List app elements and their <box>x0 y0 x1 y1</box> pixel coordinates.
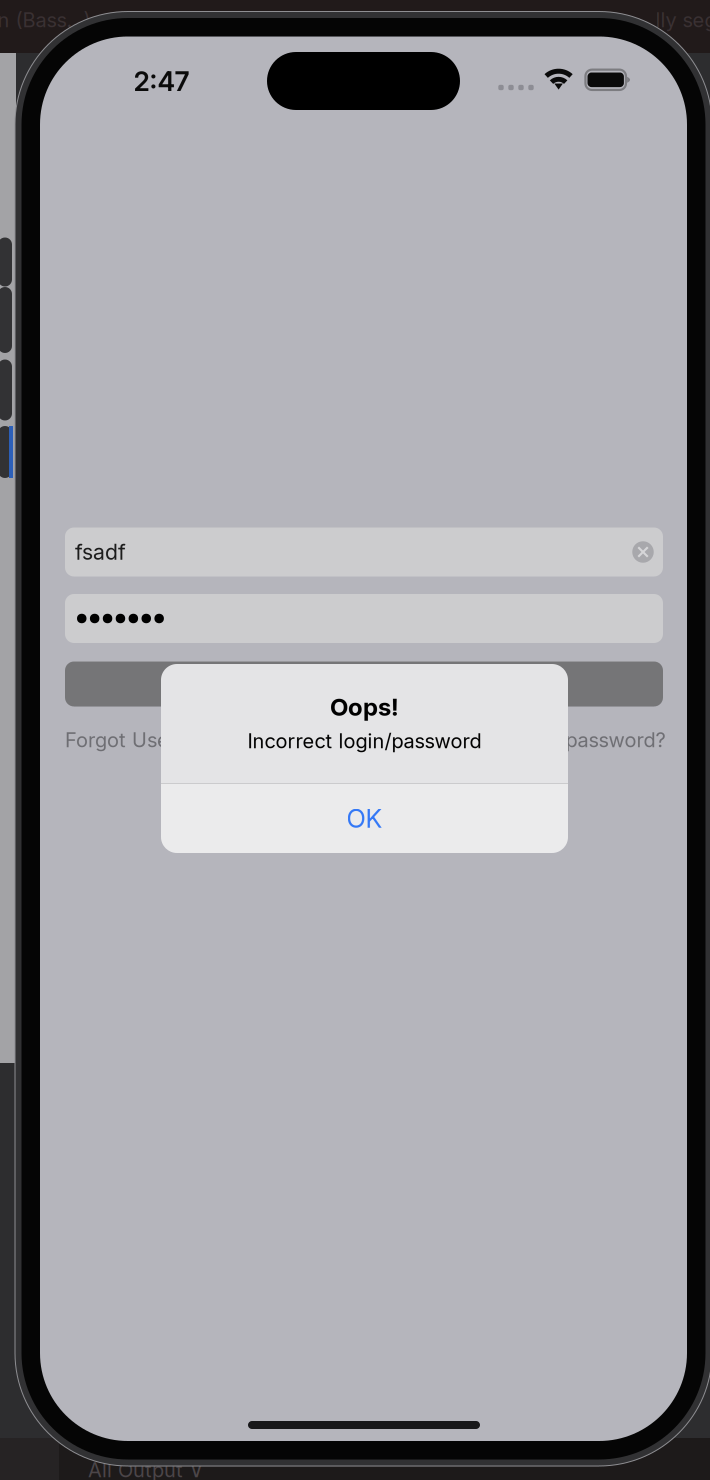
button[interactable]: Forgot Username? <box>65 728 239 752</box>
staticText: Incorrect login/password <box>247 729 481 753</box>
staticText: 2:47 <box>133 65 189 98</box>
staticText: fsadf <box>75 539 126 565</box>
button[interactable]: Clear text <box>623 530 663 574</box>
button[interactable]: Sign In <box>65 661 663 706</box>
staticText: Forgot password? <box>498 728 665 752</box>
button[interactable]: Forgot password? <box>498 728 665 752</box>
staticText: Forgot Username? <box>65 728 239 752</box>
button[interactable]: OK <box>161 784 568 853</box>
staticText: Oops! <box>330 692 399 721</box>
staticText: All Output ∨ <box>88 1458 204 1480</box>
staticText: n (Bass…) <box>0 8 90 32</box>
staticText: OK <box>346 803 382 834</box>
staticText: lly seg <box>655 8 710 32</box>
